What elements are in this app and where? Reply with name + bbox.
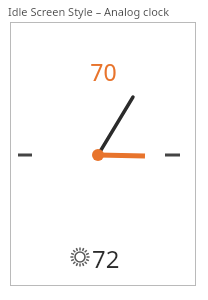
button[interactable]: 70	[10, 56, 196, 87]
button[interactable]: 70	[10, 22, 196, 286]
staticText: 72	[92, 242, 120, 272]
other: Analog clock	[10, 22, 196, 286]
staticText: 70	[90, 56, 117, 87]
other: Weather, sunny	[70, 247, 90, 267]
button[interactable]: Weather, sunny	[70, 242, 140, 272]
staticText: Idle Screen Style – Analog clock	[8, 4, 170, 19]
